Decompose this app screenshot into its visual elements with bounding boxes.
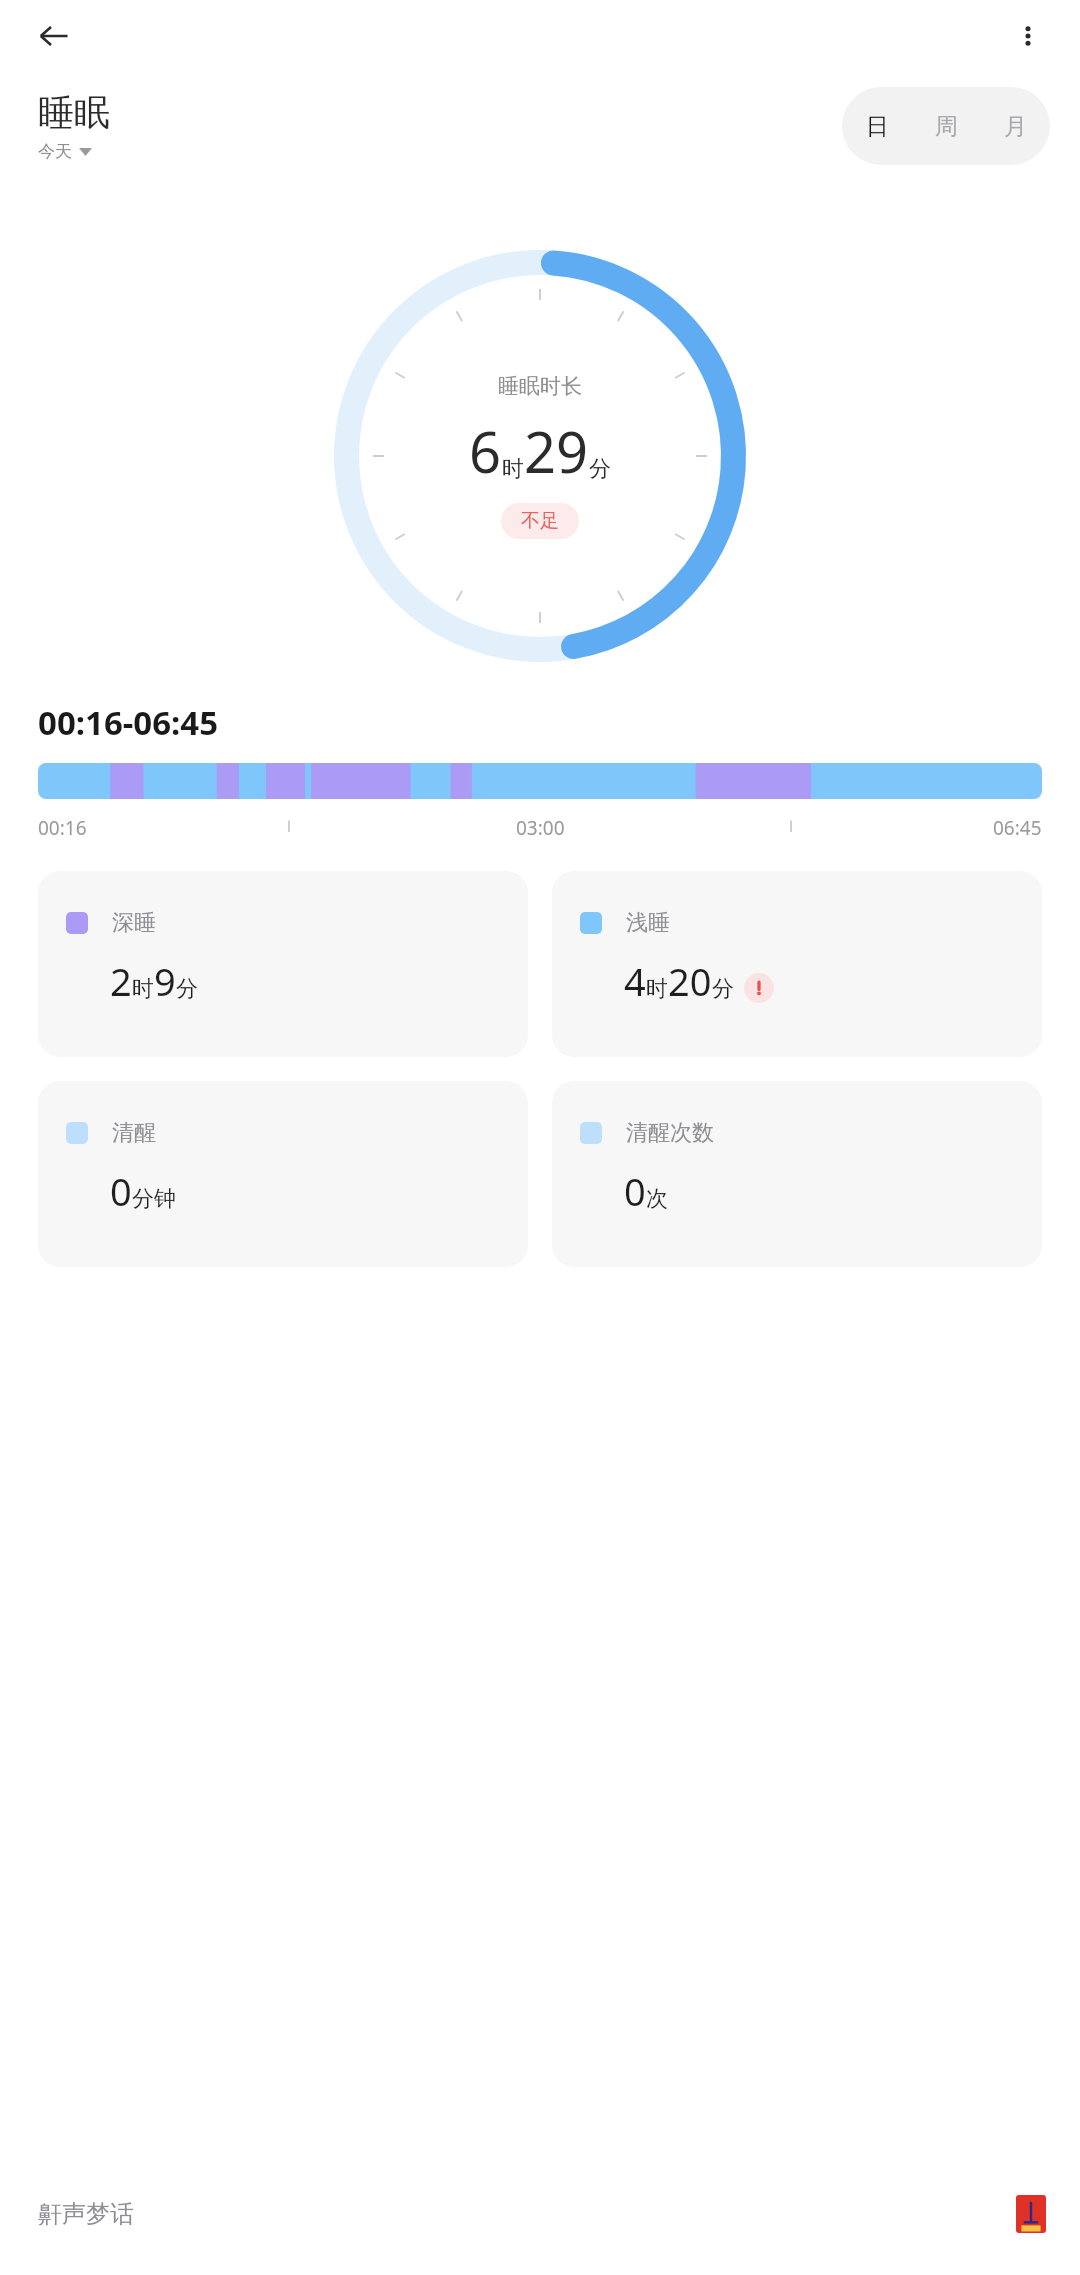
staticText: 03:00 [516, 815, 565, 841]
button[interactable]: 深睡 [38, 871, 528, 1057]
staticText: 分 [176, 975, 198, 1003]
staticText: 时 [646, 975, 668, 1003]
staticText: 睡眠 [38, 90, 110, 135]
staticText: 时 [132, 975, 154, 1003]
staticText: 分钟 [132, 1185, 176, 1213]
staticText: 2 [110, 955, 132, 1007]
staticText: 分 [712, 975, 734, 1003]
staticText: 00:16 [38, 815, 87, 841]
staticText: 不足 [521, 509, 559, 533]
staticText: 29 [524, 413, 589, 489]
button[interactable]: 浅睡 [552, 871, 1042, 1057]
button[interactable]: 周 [912, 87, 981, 165]
staticText: 分 [589, 455, 611, 483]
staticText: 日 [866, 112, 889, 141]
staticText: 浅睡 [626, 909, 670, 937]
staticText: 6 [469, 413, 502, 489]
button[interactable] [38, 763, 1042, 799]
button[interactable]: 今天 [38, 141, 92, 162]
button[interactable]: 鼾声梦话 [0, 2159, 1080, 2269]
staticText: 月 [1004, 112, 1027, 141]
staticText: 4 [624, 955, 646, 1007]
button[interactable]: 清醒 [38, 1081, 528, 1267]
button[interactable]: 月 [981, 87, 1050, 165]
button[interactable]: 日 [842, 87, 912, 165]
staticText: 次 [646, 1185, 668, 1213]
staticText: 鼾声梦话 [38, 2199, 134, 2229]
button[interactable]: More options [1000, 8, 1056, 64]
staticText: 周 [935, 112, 958, 141]
button[interactable]: 不足 [501, 503, 579, 539]
staticText: 9 [154, 955, 176, 1007]
staticText: 今天 [38, 141, 72, 162]
staticText: 时 [502, 455, 524, 483]
staticText: 06:45 [993, 815, 1042, 841]
staticText: 清醒次数 [626, 1119, 714, 1147]
staticText: 0 [624, 1165, 646, 1217]
staticText: 睡眠时长 [498, 373, 582, 399]
staticText: 20 [668, 955, 712, 1007]
staticText: 深睡 [112, 909, 156, 937]
staticText: 0 [110, 1165, 132, 1217]
staticText: 00:16-06:45 [38, 700, 219, 745]
button[interactable]: Back [26, 8, 82, 64]
button[interactable]: 清醒次数 [552, 1081, 1042, 1267]
staticText: 清醒 [112, 1119, 156, 1147]
